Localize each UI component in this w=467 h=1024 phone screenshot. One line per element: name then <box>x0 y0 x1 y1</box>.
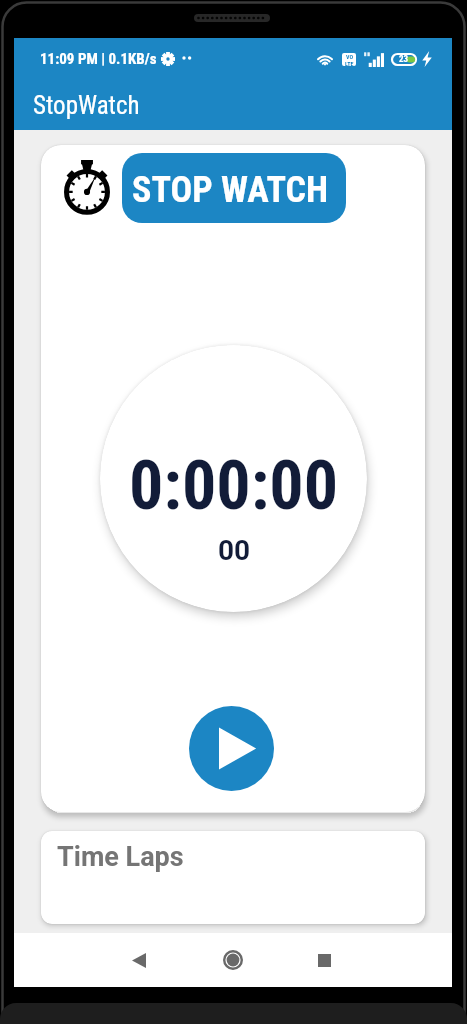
button[interactable]: Back <box>117 938 161 982</box>
button[interactable]: Start <box>189 706 274 791</box>
staticText: 23 <box>399 54 409 65</box>
button[interactable]: Recents <box>302 938 346 982</box>
staticText: 00 <box>218 534 251 567</box>
button[interactable]: Home <box>211 938 255 982</box>
button[interactable]: STOP WATCH <box>122 153 346 223</box>
staticText: LTE <box>345 60 354 66</box>
staticText: STOP WATCH <box>132 169 329 211</box>
staticText: VO <box>346 53 354 60</box>
staticText: 11:09 PM | 0.1KB/s <box>40 50 157 68</box>
button[interactable]: Time Laps <box>41 831 425 924</box>
staticText: 0:00:00 <box>129 446 339 526</box>
staticText: StopWatch <box>33 91 140 120</box>
staticText: Time Laps <box>57 841 184 873</box>
